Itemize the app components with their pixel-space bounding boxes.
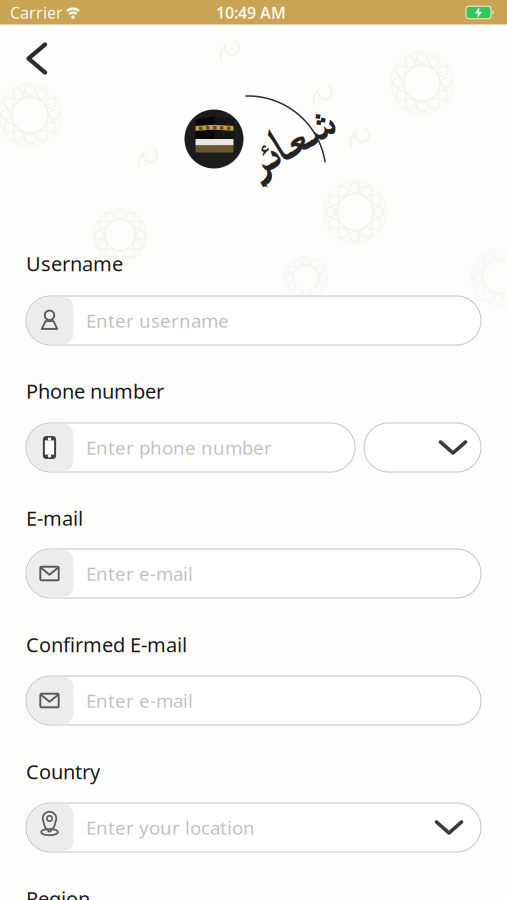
staticText: Carrier bbox=[10, 2, 63, 23]
staticText: Enter username bbox=[86, 308, 229, 333]
staticText: Enter your location bbox=[86, 815, 255, 840]
staticText: شعائر bbox=[253, 127, 347, 181]
staticText: 10:49 AM bbox=[216, 2, 286, 23]
staticText: Region bbox=[26, 885, 90, 900]
staticText: Country bbox=[26, 758, 100, 785]
staticText: Confirmed E-mail bbox=[26, 631, 187, 658]
staticText: Username bbox=[26, 250, 123, 277]
staticText: Phone number bbox=[26, 378, 164, 404]
staticText: E-mail bbox=[26, 505, 83, 531]
staticText: Enter phone number bbox=[86, 435, 272, 460]
staticText: Enter e-mail bbox=[86, 688, 193, 713]
staticText: Enter e-mail bbox=[86, 561, 193, 586]
